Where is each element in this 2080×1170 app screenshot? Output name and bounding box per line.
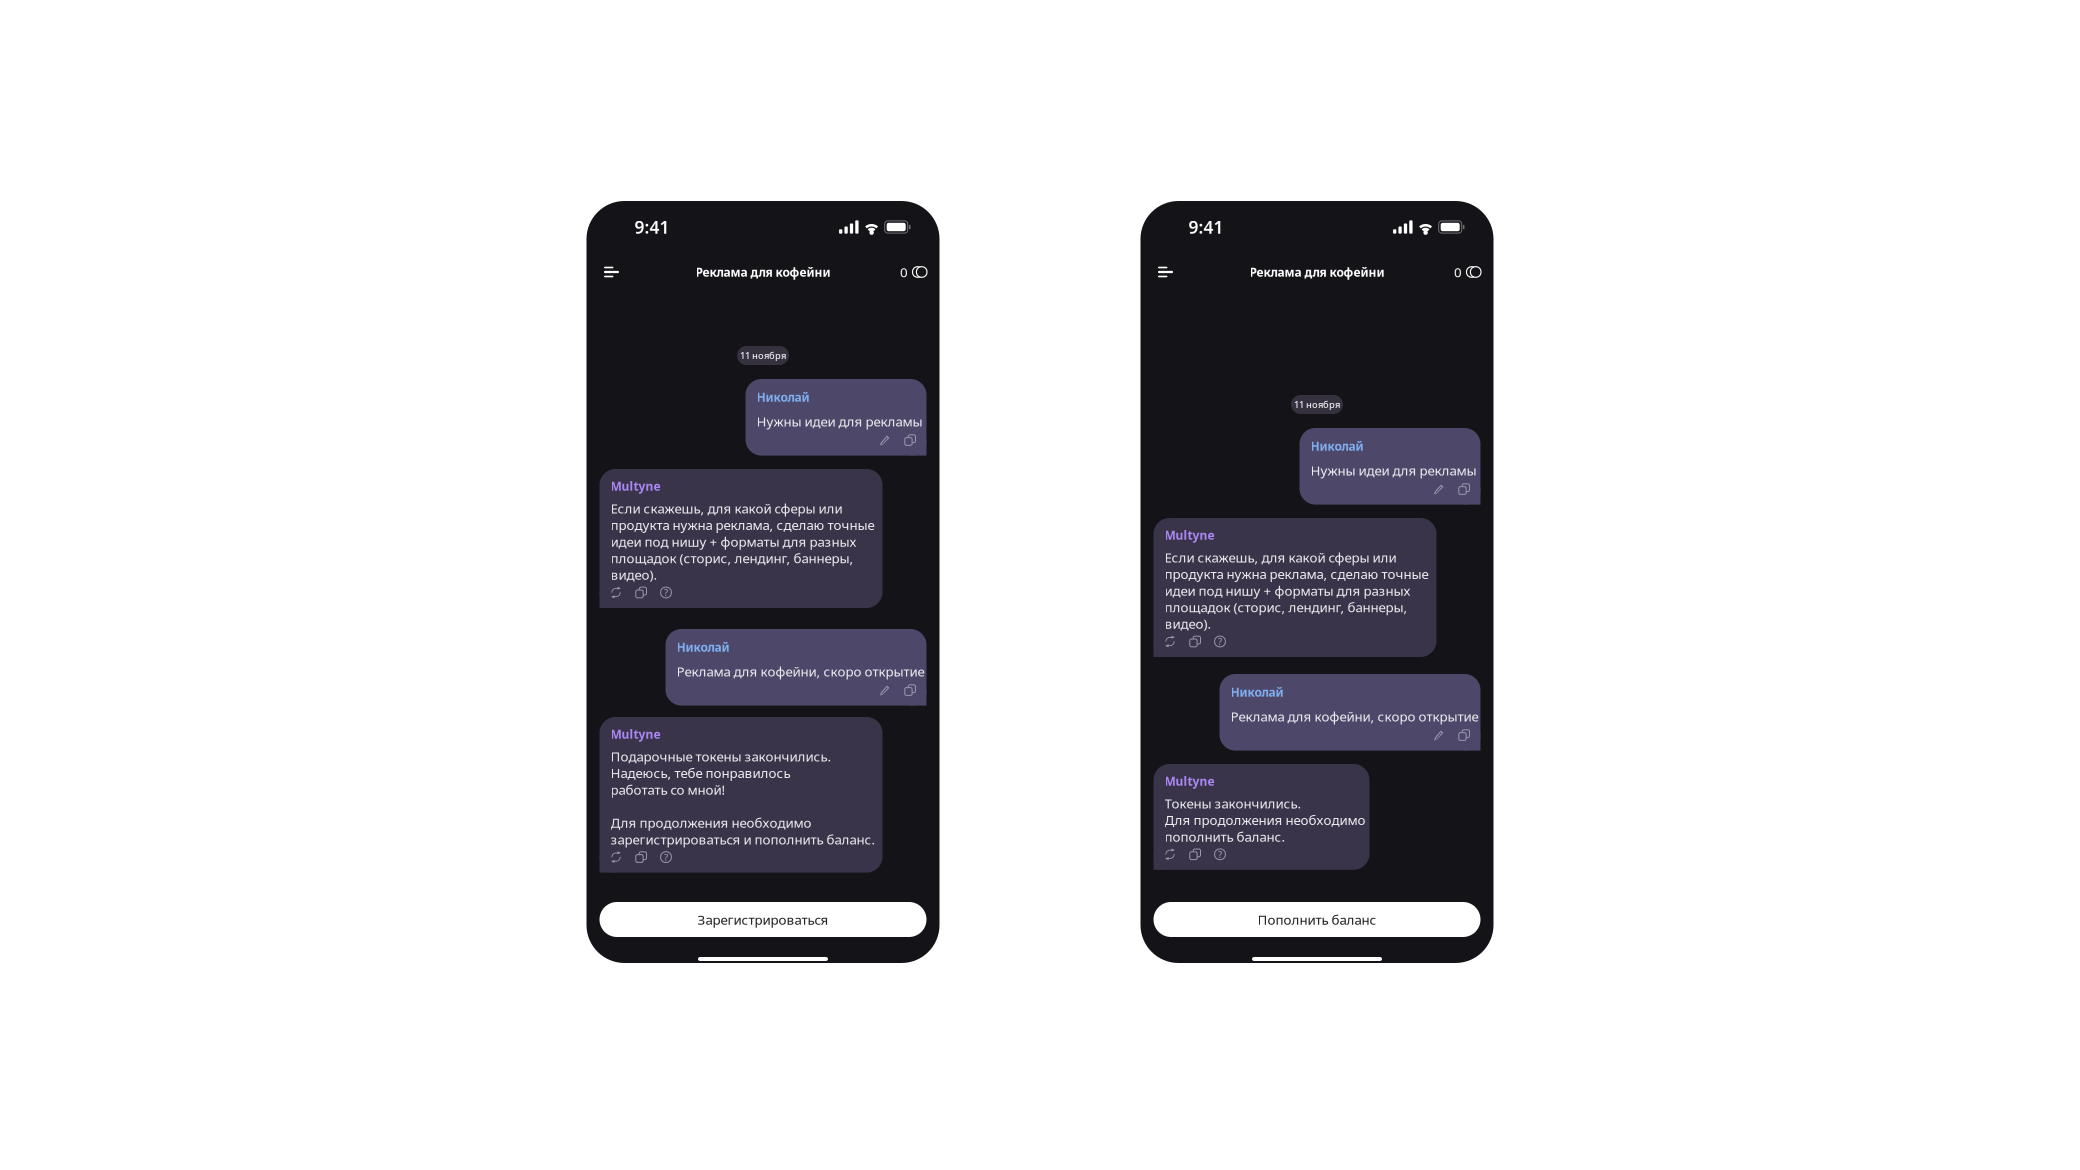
button[interactable]: Edit message <box>1433 484 1444 495</box>
button[interactable]: Help <box>1214 849 1225 860</box>
staticText: ? <box>1218 848 1222 860</box>
staticText: Николай <box>756 389 809 405</box>
staticText: Николай <box>1230 684 1283 700</box>
button[interactable]: Token balance <box>900 259 927 285</box>
staticText: пополнить баланс. <box>1164 828 1285 845</box>
staticText: площадок (сторис, лендинг, баннеры, <box>1164 598 1407 616</box>
staticText: Если скажешь, для какой сферы или <box>610 499 842 517</box>
staticText: ? <box>664 586 668 599</box>
staticText: Реклама для кофейни, скоро открытие <box>1230 707 1478 725</box>
staticText: 0 <box>1454 263 1462 281</box>
staticText: Если скажешь, для какой сферы или <box>1164 548 1396 566</box>
staticText: Multyne <box>1164 773 1214 789</box>
button[interactable]: Copy message <box>904 685 915 696</box>
button[interactable]: Copy message <box>1458 484 1469 495</box>
staticText: Multyne <box>610 478 660 494</box>
staticText: Нужны идеи для рекламы <box>1310 461 1476 479</box>
button[interactable]: Regenerate <box>610 852 621 863</box>
button[interactable]: Copy message <box>904 435 915 446</box>
button[interactable]: Regenerate <box>1164 636 1175 647</box>
staticText: видео). <box>610 566 657 583</box>
button[interactable]: Copy message <box>635 852 646 863</box>
staticText: идеи под нишу + форматы для разных <box>1164 582 1410 599</box>
staticText: Нужны идеи для рекламы <box>756 412 922 430</box>
staticText: 9:41 <box>634 215 669 238</box>
staticText: видео). <box>1164 615 1211 632</box>
staticText: Для продолжения необходимо <box>610 814 811 831</box>
button[interactable]: Token balance <box>1454 259 1481 285</box>
staticText <box>610 797 613 815</box>
button[interactable]: Regenerate <box>610 587 621 598</box>
button[interactable]: Edit message <box>1433 730 1444 741</box>
staticText: продукта нужна реклама, сделаю точные <box>610 516 874 534</box>
staticText: 11 ноября <box>1294 398 1340 411</box>
staticText: Реклама для кофейни, скоро открытие <box>676 662 924 680</box>
button[interactable]: Help <box>660 587 671 598</box>
staticText: ? <box>1218 635 1222 648</box>
button[interactable]: Regenerate <box>1164 849 1175 860</box>
staticText: Токены закончились. <box>1164 794 1301 812</box>
staticText: Подарочные токены закончились. <box>610 747 831 765</box>
staticText: Multyne <box>1164 527 1214 543</box>
button[interactable]: Menu <box>1158 259 1184 285</box>
staticText: Для продолжения необходимо <box>1164 811 1365 829</box>
button[interactable]: Menu <box>604 259 630 285</box>
button[interactable]: Copy message <box>1458 730 1469 741</box>
staticText: Multyne <box>610 726 660 742</box>
staticText: продукта нужна реклама, сделаю точные <box>1164 565 1428 583</box>
staticText: Надеюсь, тебе понравилось <box>610 764 790 782</box>
button[interactable]: Help <box>660 852 671 863</box>
button[interactable]: Edit message <box>879 685 890 696</box>
staticText: 0 <box>900 263 908 281</box>
staticText: идеи под нишу + форматы для разных <box>610 533 856 550</box>
staticText: Реклама для кофейни <box>695 264 830 280</box>
staticText: Пополнить баланс <box>1257 911 1376 928</box>
staticText: Реклама для кофейни <box>1249 264 1384 280</box>
staticText: работать со мной! <box>610 781 725 798</box>
staticText: ? <box>664 851 668 863</box>
button[interactable]: Пополнить баланс <box>1153 902 1480 937</box>
staticText: 11 ноября <box>740 349 786 362</box>
button[interactable]: Copy message <box>1189 849 1200 860</box>
staticText: Зарегистрироваться <box>697 911 828 928</box>
staticText: 9:41 <box>1188 215 1223 238</box>
button[interactable]: Copy message <box>1189 636 1200 647</box>
button[interactable]: Edit message <box>879 435 890 446</box>
staticText: Николай <box>1310 438 1363 454</box>
button[interactable]: Help <box>1214 636 1225 647</box>
button[interactable]: Copy message <box>635 587 646 598</box>
button[interactable]: Зарегистрироваться <box>599 902 926 937</box>
staticText: Николай <box>676 639 729 655</box>
staticText: зарегистрироваться и пополнить баланс. <box>610 830 875 848</box>
staticText: площадок (сторис, лендинг, баннеры, <box>610 549 853 567</box>
